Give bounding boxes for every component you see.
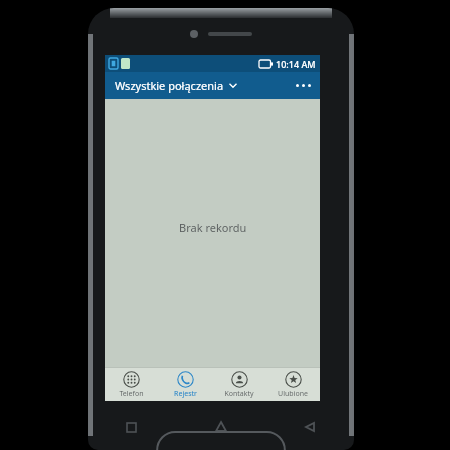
staticText: Brak rekordu [179,220,247,235]
button[interactable]: More options [287,77,320,94]
staticText: Ulubione [278,389,308,399]
button[interactable]: Ulubione [266,369,320,401]
staticText: Kontakty [224,389,254,399]
button[interactable]: Rejestr [158,369,212,401]
button[interactable]: Telefon [105,369,158,401]
button[interactable]: Kontakty [212,369,266,401]
staticText: Wszystkie połączenia [115,78,224,93]
staticText: 10:14 AM [276,58,316,70]
staticText: Rejestr [174,389,197,399]
button[interactable]: Wszystkie połączenia [105,74,243,97]
staticText: Telefon [119,389,144,399]
